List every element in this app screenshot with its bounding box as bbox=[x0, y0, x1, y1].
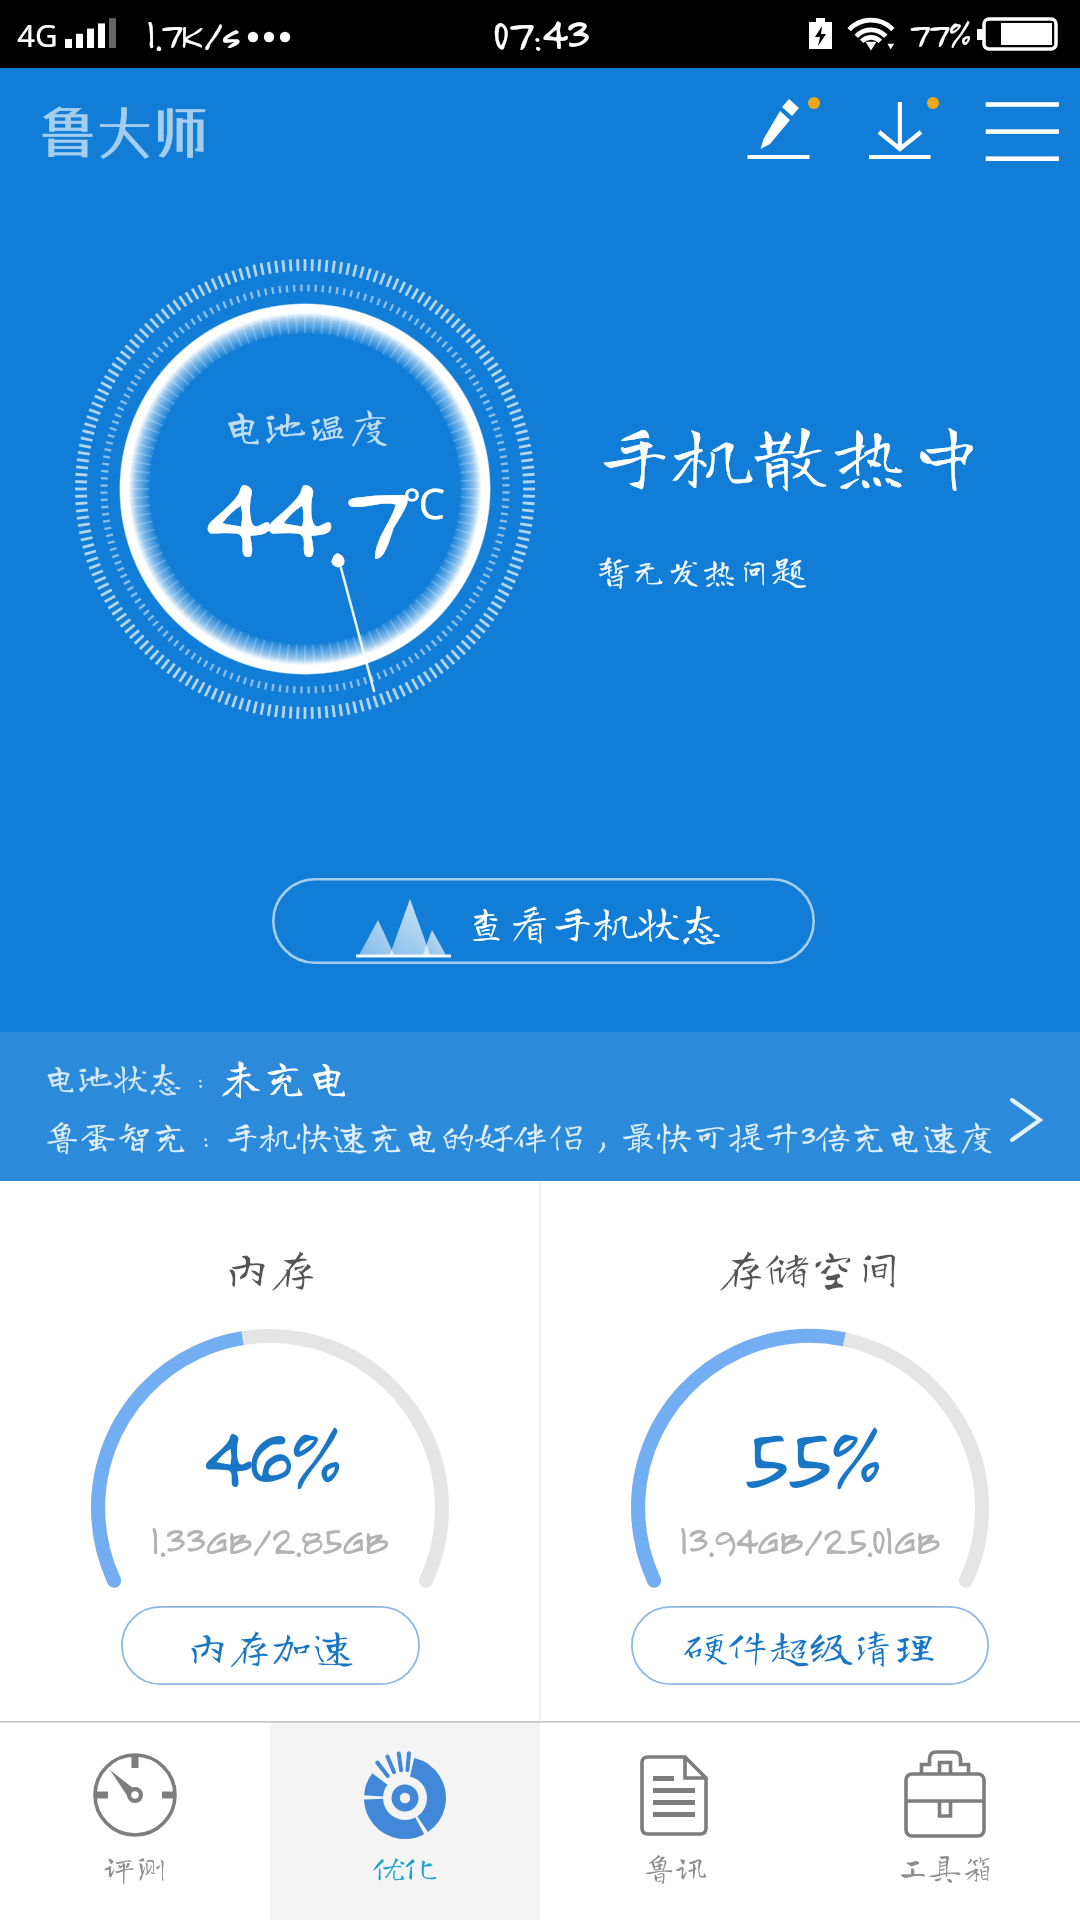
staticText: 电池温度 bbox=[222, 404, 391, 446]
button[interactable]: 电池状态： bbox=[0, 1032, 1080, 1181]
button[interactable]: Downloads bbox=[862, 88, 948, 168]
staticText: 手机散热中 bbox=[595, 414, 986, 492]
staticText: 46% bbox=[201, 1402, 339, 1510]
staticText: 硬件超级清理 bbox=[684, 1625, 937, 1667]
staticText: 4G bbox=[17, 14, 58, 56]
staticText: 鲁大师 bbox=[39, 98, 210, 165]
button[interactable]: 查看手机状态 bbox=[272, 878, 815, 964]
staticText: 13.94GB/25.01GB bbox=[678, 1514, 939, 1564]
button[interactable]: 评测 bbox=[0, 1721, 270, 1920]
staticText: 77% bbox=[908, 10, 970, 57]
staticText: 内存加速 bbox=[186, 1625, 355, 1667]
staticText: 内存 bbox=[224, 1245, 316, 1291]
staticText: 鲁讯 bbox=[643, 1851, 708, 1883]
staticText: ℃ bbox=[403, 474, 445, 531]
staticText: 工具箱 bbox=[897, 1851, 994, 1883]
button[interactable]: Feedback bbox=[742, 88, 828, 168]
staticText: 1.7K/s bbox=[146, 9, 239, 58]
button[interactable]: 工具箱 bbox=[810, 1721, 1080, 1920]
staticText: 电池状态： bbox=[43, 1059, 219, 1094]
button[interactable]: 优化 bbox=[270, 1721, 540, 1920]
staticText: 07:43 bbox=[492, 4, 588, 61]
button[interactable]: Menu bbox=[980, 88, 1064, 168]
staticText: 55% bbox=[741, 1402, 879, 1510]
staticText: 存储空间 bbox=[718, 1245, 902, 1291]
staticText: 查看手机状态 bbox=[465, 900, 723, 943]
staticText: 未充电 bbox=[219, 1054, 351, 1098]
staticText: 暂无发热问题 bbox=[596, 553, 807, 588]
staticText: 44.7 bbox=[201, 442, 402, 588]
button[interactable]: 内存加速 bbox=[121, 1606, 420, 1685]
staticText: 评测 bbox=[103, 1851, 168, 1883]
staticText: 鲁蛋智充：手机快速充电的好伴侣，最快可提升3倍充电速度 bbox=[44, 1117, 995, 1153]
button[interactable]: 硬件超级清理 bbox=[631, 1606, 989, 1685]
staticText: 1.33GB/2.85GB bbox=[150, 1514, 387, 1564]
button[interactable]: 鲁讯 bbox=[540, 1721, 810, 1920]
staticText: 优化 bbox=[373, 1851, 438, 1883]
